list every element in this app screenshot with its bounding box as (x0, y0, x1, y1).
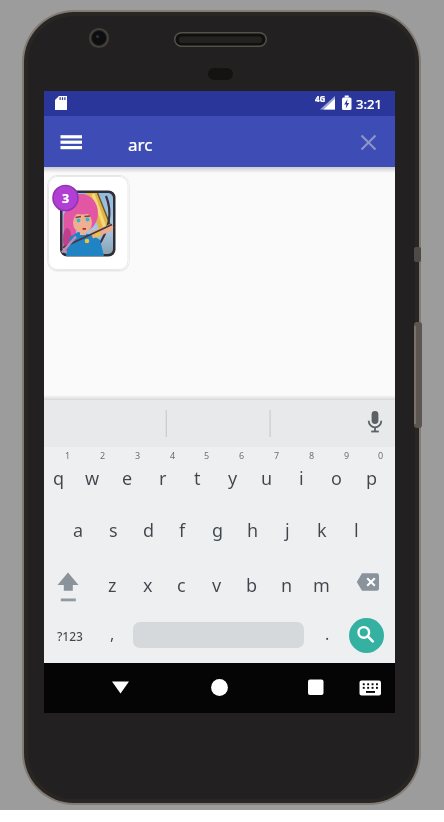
button[interactable] (359, 133, 378, 152)
button[interactable]: o (319, 456, 354, 500)
button[interactable] (59, 134, 84, 152)
button[interactable] (367, 410, 383, 435)
staticText: u (261, 466, 273, 491)
staticText: l (354, 518, 359, 543)
staticText: 6 (239, 449, 245, 460)
staticText: c (177, 573, 186, 598)
staticText: z (108, 573, 117, 598)
button[interactable]: p (354, 456, 389, 500)
button[interactable]: . (317, 622, 337, 646)
staticText: i (299, 466, 304, 491)
staticText: k (317, 518, 327, 543)
button[interactable]: y (215, 456, 250, 500)
staticText: 4G (315, 93, 326, 104)
staticText: m (313, 573, 330, 598)
button[interactable]: t (180, 456, 215, 500)
staticText: ?123 (57, 628, 83, 644)
button[interactable] (108, 678, 133, 698)
button[interactable]: k (304, 508, 339, 552)
button[interactable]: m (304, 563, 339, 607)
button[interactable]: e (110, 456, 145, 500)
button[interactable]: x (130, 563, 165, 607)
button[interactable] (55, 569, 84, 603)
staticText: s (109, 518, 118, 543)
button[interactable]: j (270, 508, 305, 552)
staticText: 0 (378, 449, 384, 460)
staticText: w (85, 466, 100, 491)
button[interactable] (356, 570, 383, 595)
staticText: 8 (309, 449, 315, 460)
staticText: 9 (344, 449, 350, 460)
staticText: f (179, 518, 186, 543)
staticText: 1 (65, 449, 71, 460)
button[interactable]: z (95, 563, 130, 607)
staticText: 3 (135, 449, 141, 460)
staticText: 3:21 (356, 95, 382, 110)
button[interactable]: ?123 (52, 624, 88, 648)
button[interactable]: b (234, 563, 269, 607)
button[interactable]: r (145, 456, 180, 500)
button[interactable]: h (235, 508, 270, 552)
staticText: a (73, 518, 84, 543)
button[interactable]: , (102, 622, 122, 646)
staticText: arc (128, 133, 153, 153)
button[interactable]: c (164, 563, 199, 607)
staticText: r (159, 466, 167, 491)
button[interactable] (357, 678, 384, 698)
button[interactable]: n (269, 563, 304, 607)
button[interactable]: 3 (48, 176, 129, 270)
button[interactable]: g (200, 508, 235, 552)
staticText: o (331, 466, 342, 491)
staticText: t (194, 466, 201, 491)
staticText: 2 (100, 449, 106, 460)
staticText: n (281, 573, 293, 598)
button[interactable]: d (131, 508, 166, 552)
staticText: 4 (170, 449, 176, 460)
button[interactable]: w (75, 456, 110, 500)
staticText: e (122, 466, 133, 491)
staticText: h (247, 518, 259, 543)
button[interactable] (207, 675, 232, 700)
staticText: p (366, 466, 378, 491)
staticText: j (285, 518, 290, 543)
staticText: b (246, 573, 258, 598)
staticText: 5 (204, 449, 210, 460)
staticText: . (325, 623, 330, 645)
staticText: g (212, 518, 224, 543)
button[interactable]: a (61, 508, 96, 552)
staticText: q (53, 466, 65, 491)
staticText: , (110, 623, 115, 645)
staticText: 7 (274, 449, 280, 460)
button[interactable]: f (165, 508, 200, 552)
staticText: v (212, 573, 222, 598)
button[interactable]: l (339, 508, 374, 552)
staticText: 3 (62, 190, 70, 207)
button[interactable]: q (41, 456, 76, 500)
staticText: y (228, 466, 238, 491)
button[interactable] (303, 675, 329, 701)
staticText: x (143, 573, 153, 598)
button[interactable]: u (249, 456, 284, 500)
staticText: d (143, 518, 155, 543)
button[interactable] (349, 618, 384, 653)
button[interactable]: i (284, 456, 319, 500)
button[interactable]: v (199, 563, 234, 607)
button[interactable]: s (96, 508, 131, 552)
